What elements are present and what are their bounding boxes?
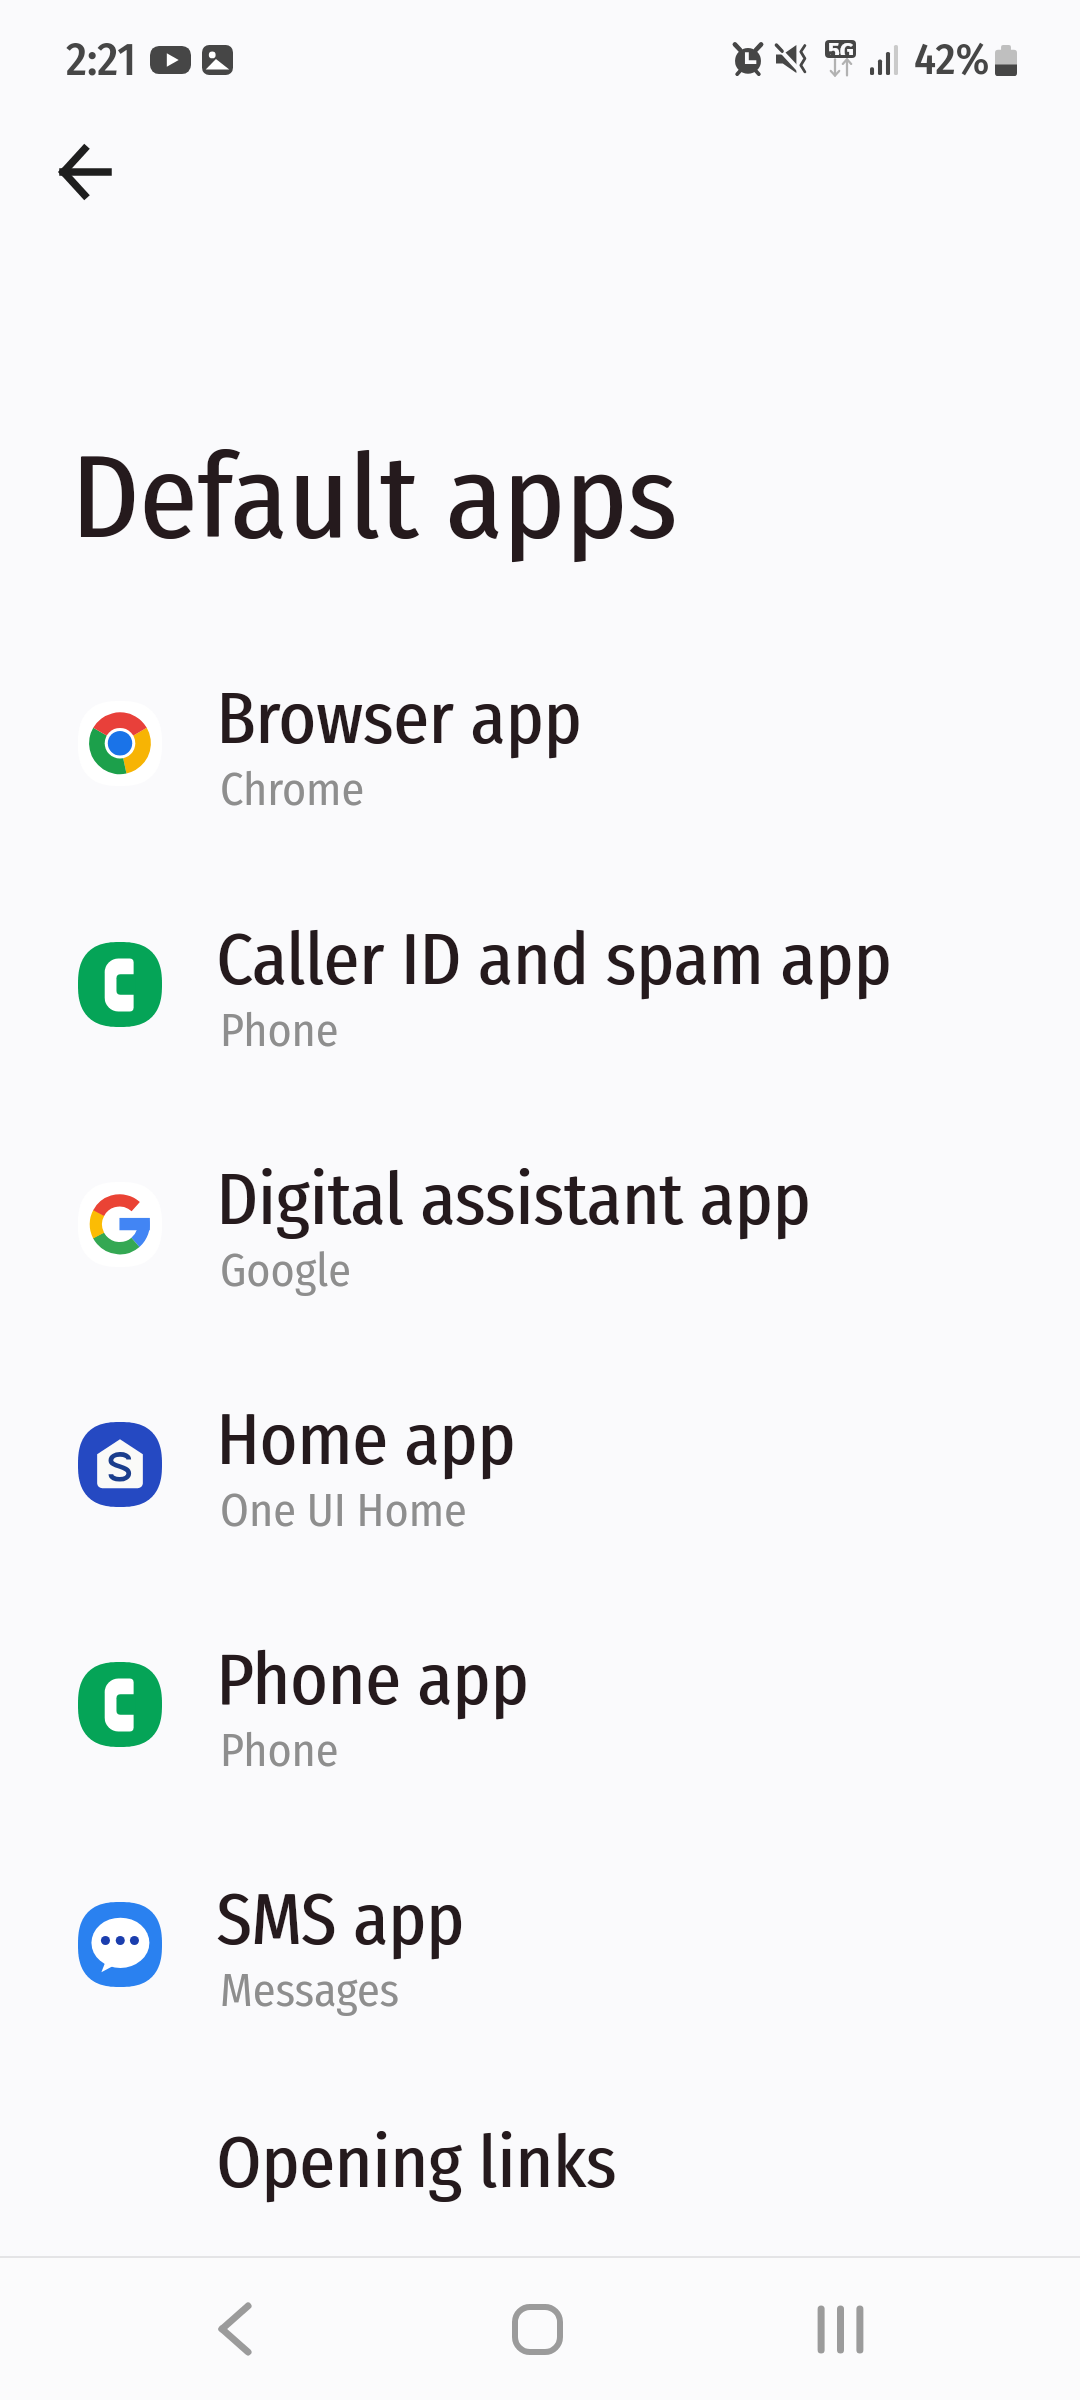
- staticText: SMS app: [216, 1877, 464, 1963]
- button[interactable]: Browser app: [0, 587, 1080, 827]
- staticText: Home app: [216, 1397, 516, 1483]
- staticText: Chrome: [220, 762, 365, 817]
- staticText: 5G: [828, 37, 854, 55]
- staticText: Default apps: [72, 428, 679, 568]
- staticText: Google: [220, 1243, 352, 1298]
- staticText: Messages: [220, 1963, 400, 2018]
- staticText: Browser app: [217, 676, 583, 762]
- staticText: Digital assistant app: [217, 1157, 812, 1243]
- staticText: 2:21: [66, 32, 137, 87]
- staticText: SMS app: [217, 1877, 465, 1963]
- staticText: Phone app: [216, 1637, 529, 1723]
- button[interactable]: Caller ID and spam app: [0, 828, 1080, 1068]
- button[interactable]: Navigate up: [31, 118, 138, 225]
- button[interactable]: Back: [145, 2258, 325, 2400]
- staticText: Caller ID and spam app: [216, 917, 892, 1003]
- button[interactable]: Home: [447, 2258, 627, 2400]
- button[interactable]: Digital assistant app: [0, 1068, 1080, 1308]
- staticText: Opening links: [217, 2120, 618, 2206]
- staticText: Opening links: [216, 2120, 617, 2206]
- button[interactable]: Phone app: [0, 1548, 1080, 1788]
- button[interactable]: Home app: [0, 1308, 1080, 1548]
- staticText: One UI Home: [220, 1483, 467, 1538]
- staticText: Phone: [220, 1003, 339, 1058]
- button[interactable]: Recent apps: [750, 2258, 930, 2400]
- staticText: Digital assistant app: [216, 1157, 811, 1243]
- staticText: Home app: [217, 1397, 517, 1483]
- button[interactable]: Opening links: [0, 2031, 1080, 2215]
- staticText: Phone app: [217, 1637, 530, 1723]
- button[interactable]: SMS app: [0, 1788, 1080, 2028]
- staticText: Browser app: [216, 676, 582, 762]
- staticText: Default apps: [71, 428, 678, 568]
- staticText: 42%: [914, 33, 990, 86]
- staticText: Caller ID and spam app: [217, 917, 893, 1003]
- staticText: Phone: [220, 1723, 339, 1778]
